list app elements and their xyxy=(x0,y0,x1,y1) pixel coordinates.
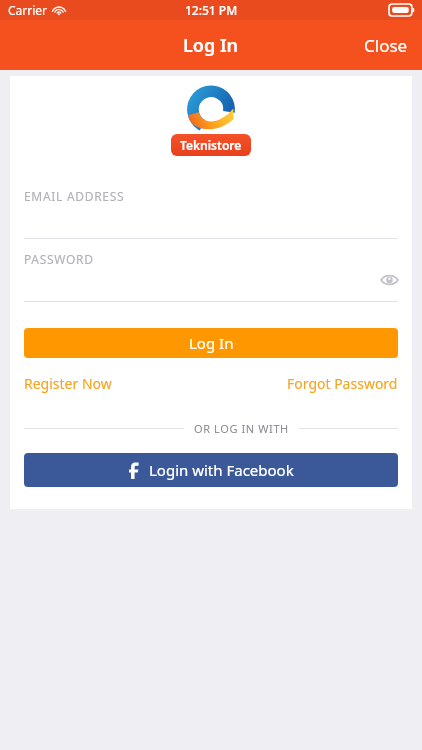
button[interactable]: Login with Facebook xyxy=(24,453,398,487)
staticText: 12:51 PM xyxy=(185,2,238,18)
staticText: EMAIL ADDRESS xyxy=(24,188,125,204)
button[interactable]: PASSWORD xyxy=(10,239,412,301)
button[interactable]: Log In xyxy=(24,328,398,358)
staticText: Login with Facebook xyxy=(149,460,294,480)
staticText: Register Now xyxy=(24,374,112,393)
button[interactable]: Show password xyxy=(378,269,400,291)
button[interactable]: EMAIL ADDRESS xyxy=(10,176,412,238)
staticText: OR LOG IN WITH xyxy=(194,421,289,436)
staticText: Forgot Password xyxy=(287,374,398,393)
staticText: Carrier xyxy=(8,2,48,18)
staticText: Close xyxy=(364,34,408,57)
staticText: Teknistore xyxy=(180,137,242,153)
button[interactable]: Register Now xyxy=(24,374,112,393)
staticText: Log In xyxy=(183,33,239,58)
staticText: PASSWORD xyxy=(24,251,94,267)
button[interactable]: Close xyxy=(350,24,422,67)
button[interactable]: Forgot Password xyxy=(287,374,398,393)
staticText: Log In xyxy=(189,333,234,353)
